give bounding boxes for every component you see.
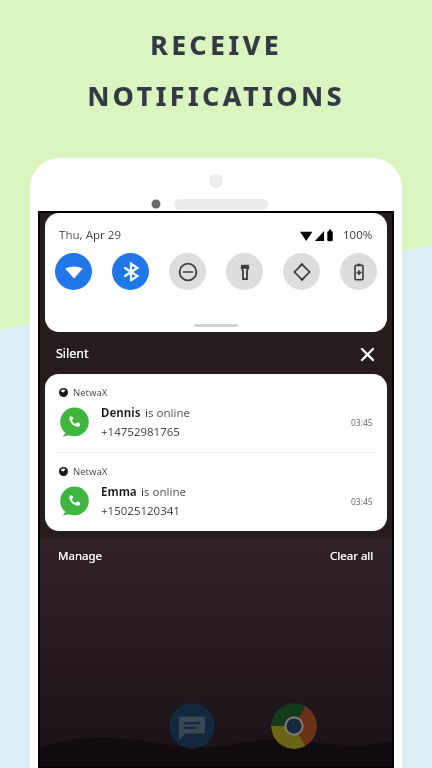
- staticText: +15025120341: [101, 503, 180, 519]
- staticText: is online: [145, 405, 191, 421]
- staticText: is online: [141, 484, 187, 500]
- staticText: Dennis: [101, 405, 141, 421]
- button[interactable]: Bluetooth: [112, 253, 149, 290]
- button[interactable]: Close: [356, 343, 378, 365]
- button[interactable]: Flashlight: [226, 253, 263, 290]
- staticText: NetwaX: [73, 386, 108, 399]
- button[interactable]: Messages: [169, 703, 215, 749]
- staticText: Emma: [101, 484, 137, 500]
- button[interactable]: NetwaX: [45, 374, 387, 452]
- staticText: NOTIFICATIONS: [0, 77, 432, 114]
- staticText: 03:45: [351, 417, 373, 429]
- staticText: 03:45: [351, 496, 373, 508]
- button[interactable]: Clear all: [328, 546, 376, 566]
- staticText: Manage: [58, 548, 102, 564]
- staticText: 100%: [343, 227, 373, 243]
- button[interactable]: NetwaX: [45, 453, 387, 531]
- button[interactable]: Chrome: [271, 703, 317, 749]
- staticText: Clear all: [330, 548, 374, 564]
- staticText: RECEIVE: [0, 26, 432, 63]
- button[interactable]: Wi-Fi: [55, 253, 92, 290]
- staticText: Thu, Apr 29: [59, 227, 121, 243]
- staticText: NetwaX: [73, 465, 108, 478]
- staticText: +14752981765: [101, 424, 180, 440]
- button[interactable]: Manage: [56, 546, 104, 566]
- button[interactable]: Auto rotate: [283, 253, 320, 290]
- staticText: Silent: [56, 345, 89, 362]
- button[interactable]: Battery saver: [340, 253, 377, 290]
- button[interactable]: Do not disturb: [169, 253, 206, 290]
